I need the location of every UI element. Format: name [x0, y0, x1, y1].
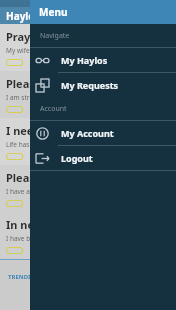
- staticText: I have an interview: [6, 187, 64, 196]
- staticText: Logout: [61, 152, 93, 164]
- staticText: Navigate: [40, 31, 70, 41]
- button[interactable]: I need guidance: [0, 118, 176, 165]
- button[interactable]: In need of prayer: [0, 212, 176, 259]
- other: My Requests: [36, 79, 49, 92]
- staticText: My Haylos: [61, 54, 108, 66]
- staticText: Please pray for me: [6, 76, 108, 91]
- staticText: Prayer for healing: [6, 29, 105, 44]
- other: Logout: [36, 152, 49, 165]
- staticText: My Requests: [61, 79, 119, 91]
- other: My Account: [36, 127, 49, 140]
- staticText: TRENDING: [8, 273, 40, 281]
- button[interactable]: Haylos: [0, 7, 176, 24]
- staticText: I am struggling today: [6, 93, 72, 102]
- staticText: Haylos: [6, 9, 40, 23]
- staticText: I need guidance: [6, 123, 94, 138]
- staticText: Please pray: [6, 170, 69, 185]
- staticText: Menu: [39, 5, 68, 19]
- button[interactable]: My Haylos: [30, 48, 176, 72]
- button[interactable]: My Account: [30, 121, 176, 145]
- button[interactable]: Prayer for healing: [0, 24, 176, 71]
- button[interactable]: Please pray: [0, 165, 176, 212]
- staticText: In need of prayer: [6, 217, 101, 232]
- staticText: Account: [40, 104, 67, 114]
- button[interactable]: Logout: [30, 146, 176, 170]
- staticText: My Account: [61, 127, 114, 139]
- staticText: Life has been hard: [6, 140, 63, 149]
- staticText: I have been unwell: [6, 234, 64, 243]
- other: My Haylos: [36, 54, 49, 67]
- button[interactable]: Please pray for me: [0, 71, 176, 118]
- button[interactable]: TRENDING: [0, 260, 176, 286]
- button[interactable]: My Requests: [30, 73, 176, 97]
- staticText: My wife is in hospital: [6, 46, 70, 55]
